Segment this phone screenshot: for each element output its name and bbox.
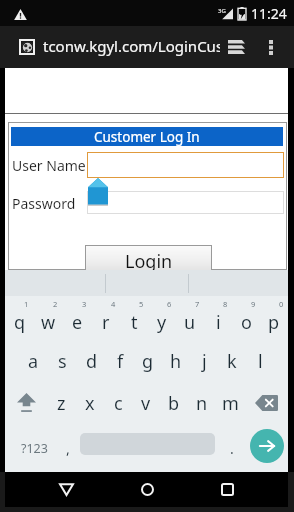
staticText: l bbox=[258, 349, 263, 374]
staticText: s bbox=[58, 349, 67, 374]
staticText: m bbox=[222, 391, 239, 416]
button[interactable]: 0 bbox=[260, 296, 288, 340]
button[interactable]: Go bbox=[250, 429, 284, 463]
button[interactable]: x bbox=[76, 382, 104, 424]
button[interactable]: c bbox=[104, 382, 132, 424]
staticText: tconw.kgyl.com/LoginCus bbox=[43, 36, 220, 56]
button[interactable]: 8 bbox=[204, 296, 232, 340]
button[interactable]: Recents bbox=[207, 472, 247, 507]
button[interactable]: v bbox=[132, 382, 160, 424]
button[interactable]: . bbox=[219, 424, 245, 472]
staticText: n bbox=[196, 391, 208, 416]
staticText: 1 bbox=[24, 299, 29, 309]
button[interactable]: 1 bbox=[5, 296, 34, 340]
button[interactable]: ?123 bbox=[9, 424, 59, 472]
button[interactable] bbox=[87, 191, 284, 214]
staticText: j bbox=[202, 349, 207, 374]
staticText: 3G bbox=[218, 7, 226, 15]
button[interactable]: s bbox=[48, 340, 77, 382]
staticText: 5 bbox=[139, 299, 144, 309]
staticText: f bbox=[117, 349, 124, 374]
staticText: Login bbox=[125, 249, 173, 274]
button[interactable]: Backspace bbox=[244, 382, 288, 424]
staticText: 11:24 bbox=[251, 4, 287, 23]
staticText: Customer Log In bbox=[94, 128, 200, 146]
button[interactable]: f bbox=[106, 340, 134, 382]
staticText: b bbox=[168, 391, 180, 416]
staticText: d bbox=[86, 349, 98, 374]
staticText: 9 bbox=[251, 299, 256, 309]
button[interactable]: m bbox=[216, 382, 244, 424]
button[interactable]: 6 bbox=[148, 296, 176, 340]
staticText: c bbox=[114, 391, 123, 416]
staticText: w bbox=[41, 310, 56, 335]
staticText: , bbox=[66, 439, 70, 458]
staticText: 3 bbox=[82, 299, 87, 309]
button[interactable]: 3 bbox=[63, 296, 92, 340]
button[interactable]: d bbox=[77, 340, 106, 382]
button[interactable]: More options bbox=[252, 26, 290, 68]
staticText: o bbox=[241, 310, 252, 335]
staticText: 2 bbox=[53, 299, 58, 309]
staticText: x bbox=[85, 391, 95, 416]
button[interactable] bbox=[87, 152, 284, 178]
staticText: q bbox=[14, 310, 26, 335]
staticText: g bbox=[142, 349, 154, 374]
staticText: t bbox=[131, 310, 138, 335]
staticText: i bbox=[216, 310, 221, 335]
button[interactable]: a bbox=[19, 340, 48, 382]
staticText: 6 bbox=[167, 299, 172, 309]
staticText: v bbox=[141, 391, 151, 416]
staticText: 7 bbox=[195, 299, 200, 309]
button[interactable]: Customer Log In bbox=[11, 127, 283, 146]
button[interactable]: Tabs bbox=[220, 26, 252, 68]
button[interactable]: j bbox=[190, 340, 218, 382]
staticText: a bbox=[28, 349, 39, 374]
staticText: p bbox=[268, 310, 280, 335]
staticText: u bbox=[184, 310, 196, 335]
button[interactable]: h bbox=[162, 340, 190, 382]
button[interactable]: Login bbox=[85, 245, 212, 277]
staticText: y bbox=[157, 310, 167, 335]
staticText: 4 bbox=[111, 299, 116, 309]
staticText: 8 bbox=[223, 299, 228, 309]
button[interactable]: 2 bbox=[34, 296, 63, 340]
staticText: Password bbox=[12, 194, 76, 213]
button[interactable]: k bbox=[218, 340, 246, 382]
staticText: z bbox=[57, 391, 66, 416]
staticText: . bbox=[230, 439, 234, 458]
staticText: e bbox=[72, 310, 83, 335]
button[interactable]: 7 bbox=[176, 296, 204, 340]
staticText: ?123 bbox=[21, 440, 48, 457]
staticText: User Name bbox=[12, 156, 86, 175]
button[interactable]: g bbox=[134, 340, 162, 382]
button[interactable]: 5 bbox=[120, 296, 148, 340]
button[interactable]: 9 bbox=[232, 296, 260, 340]
button[interactable]: Site information bbox=[19, 39, 35, 55]
button[interactable]: z bbox=[47, 382, 76, 424]
button[interactable]: Home bbox=[127, 472, 167, 507]
button[interactable]: n bbox=[188, 382, 216, 424]
staticText: k bbox=[227, 349, 237, 374]
staticText: h bbox=[170, 349, 182, 374]
button[interactable]: b bbox=[160, 382, 188, 424]
button[interactable]: , bbox=[55, 424, 81, 472]
button[interactable]: Shift bbox=[5, 382, 47, 424]
staticText: r bbox=[102, 310, 110, 335]
staticText: 0 bbox=[279, 299, 284, 309]
button[interactable]: 4 bbox=[92, 296, 120, 340]
button[interactable]: l bbox=[246, 340, 274, 382]
button[interactable]: Back bbox=[46, 472, 86, 507]
